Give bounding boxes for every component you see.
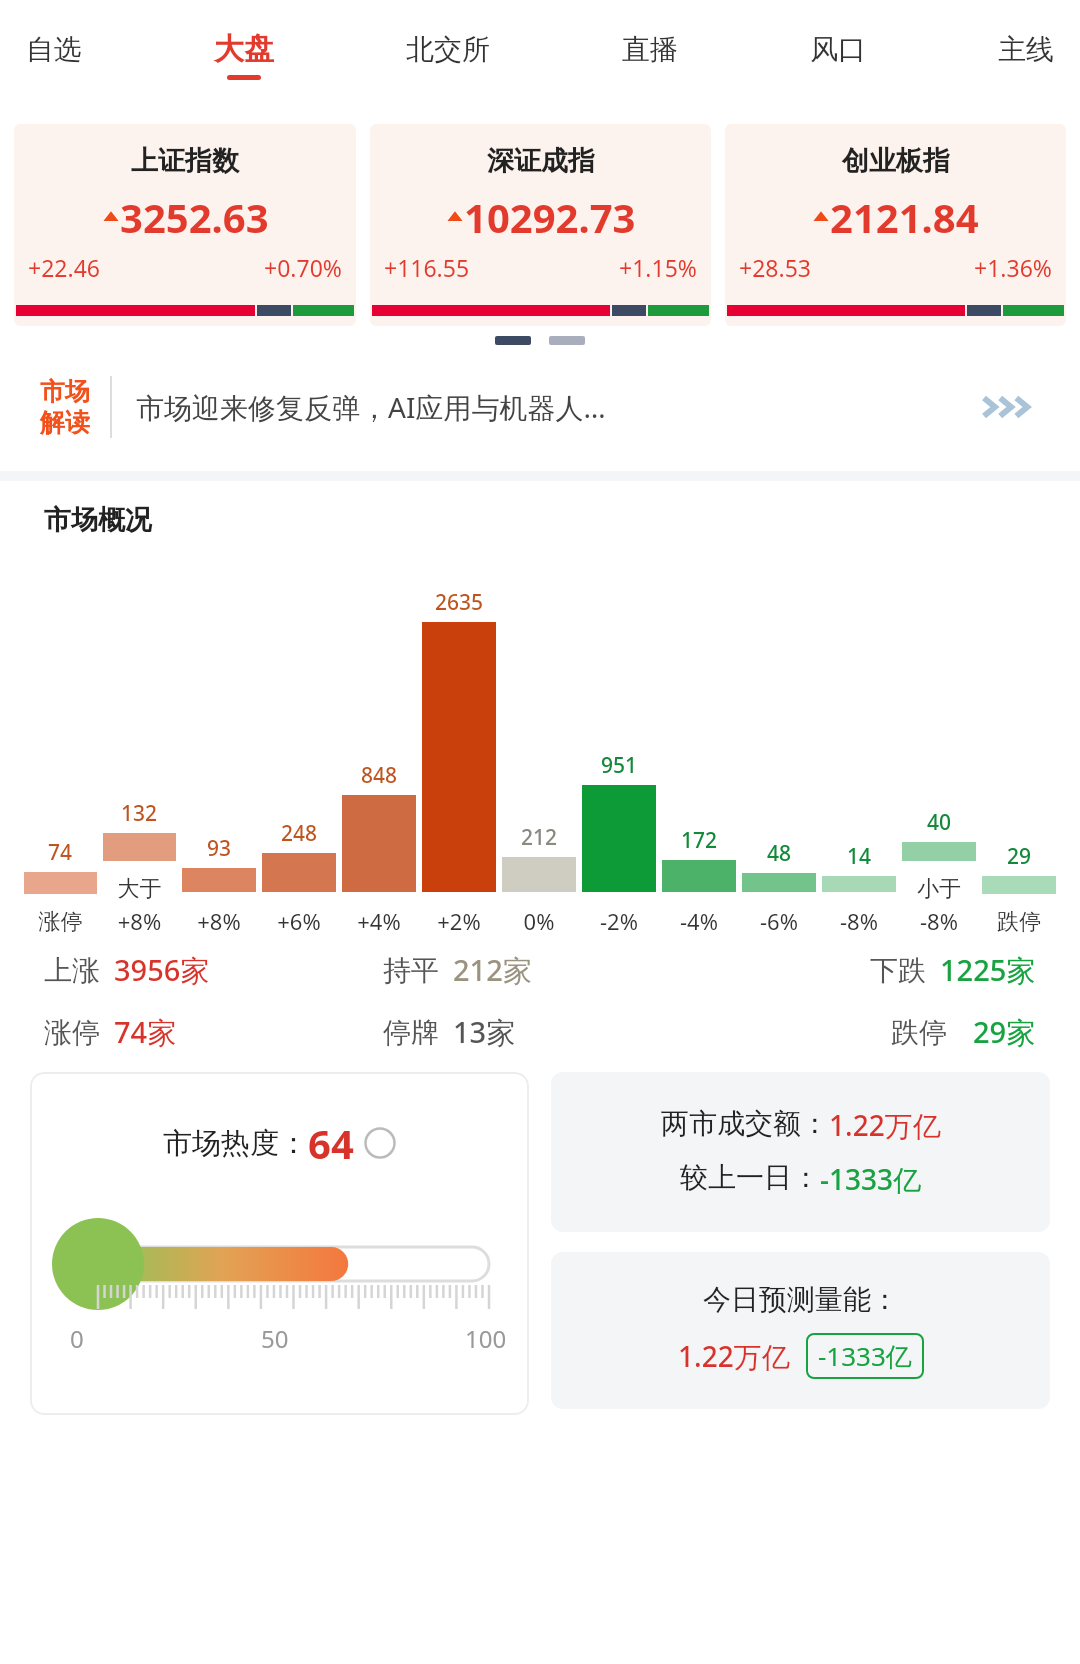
staticText: 1.22万亿 — [678, 1337, 790, 1375]
button[interactable]: 市场 — [0, 357, 1080, 457]
staticText: 3956家 — [114, 950, 210, 990]
button[interactable]: 深证成指 — [370, 124, 711, 326]
staticText: 深证成指 — [487, 144, 595, 178]
staticText: 13家 — [453, 1012, 516, 1052]
other: 更多 — [982, 391, 1040, 423]
staticText: 2121.84 — [830, 190, 979, 244]
staticText: 93 — [207, 834, 232, 863]
button[interactable]: 上证指数 — [14, 124, 356, 326]
staticText: 市场迎来修复反弹，AI应用与机器人… — [136, 388, 982, 426]
button[interactable]: 大盘 — [206, 24, 282, 86]
staticText: -2% — [582, 906, 656, 936]
staticText: -4% — [662, 906, 736, 936]
staticText: 两市成交额： — [661, 1106, 829, 1141]
button[interactable]: 两市成交额： — [551, 1072, 1050, 1232]
staticText: 市场 — [40, 376, 90, 407]
staticText: 172 — [681, 826, 718, 855]
staticText: 132 — [121, 799, 158, 828]
staticText: 跌停 — [891, 1015, 947, 1050]
staticText: 74家 — [114, 1012, 177, 1052]
staticText: 848 — [361, 761, 398, 790]
staticText: 涨停 — [24, 908, 97, 936]
button[interactable]: 风口 — [802, 26, 874, 85]
staticText: +2% — [422, 906, 496, 936]
button[interactable]: 今日预测量能： — [551, 1252, 1050, 1409]
staticText: 1225家 — [940, 950, 1036, 990]
staticText: 北交所 — [406, 32, 490, 67]
staticText: 14 — [847, 842, 872, 871]
staticText: 较上一日： — [680, 1160, 820, 1195]
button[interactable]: 直播 — [614, 26, 686, 85]
staticText: 248 — [281, 819, 318, 848]
staticText: 50 — [261, 1322, 289, 1355]
staticText: 持平 — [383, 953, 439, 988]
staticText: 解读 — [40, 407, 90, 438]
staticText: 大于 — [103, 875, 176, 903]
staticText: 大盘 — [214, 30, 274, 68]
staticText: +1.36% — [974, 252, 1052, 283]
staticText: -1333亿 — [818, 1338, 912, 1374]
staticText: 29 — [1007, 842, 1032, 871]
button[interactable]: 创业板指 — [725, 124, 1066, 326]
staticText: 1.22万亿 — [829, 1106, 941, 1144]
staticText: 上涨 — [44, 953, 100, 988]
button[interactable]: 市场热度： — [30, 1072, 529, 1415]
staticText: 2635 — [435, 588, 484, 617]
other: 说明 — [364, 1127, 396, 1159]
staticText: 951 — [601, 751, 638, 780]
staticText: +28.53 — [739, 252, 811, 283]
staticText: +6% — [262, 906, 336, 936]
staticText: 跌停 — [982, 908, 1056, 936]
staticText: -1333亿 — [820, 1160, 922, 1198]
staticText: 64 — [308, 1116, 354, 1170]
staticText: +1.15% — [619, 252, 697, 283]
staticText: 主线 — [998, 32, 1054, 67]
staticText: 创业板指 — [842, 144, 950, 178]
staticText: 风口 — [810, 32, 866, 67]
staticText: -8% — [822, 906, 896, 936]
button[interactable]: 北交所 — [398, 26, 498, 85]
staticText: 212 — [521, 823, 558, 852]
staticText: +0.70% — [264, 252, 342, 283]
staticText: +22.46 — [28, 252, 100, 283]
staticText: 74 — [48, 838, 73, 867]
staticText: 自选 — [26, 32, 82, 67]
staticText: -6% — [742, 906, 816, 936]
staticText: 3252.63 — [120, 190, 269, 244]
staticText: 市场热度： — [163, 1125, 308, 1162]
staticText: 40 — [927, 808, 952, 837]
staticText: 小于 — [902, 875, 976, 903]
staticText: +8% — [103, 906, 176, 936]
staticText: 212家 — [453, 950, 532, 990]
staticText: 上证指数 — [131, 144, 239, 178]
staticText: +8% — [182, 906, 256, 936]
staticText: 10292.73 — [464, 190, 636, 244]
staticText: 市场概况 — [44, 503, 152, 537]
staticText: 0% — [502, 906, 576, 936]
staticText: 100 — [465, 1322, 507, 1355]
button[interactable]: 主线 — [990, 26, 1062, 85]
staticText: 今日预测量能： — [703, 1282, 899, 1317]
button[interactable]: 自选 — [18, 26, 90, 85]
staticText: 0 — [70, 1322, 84, 1355]
staticText: 下跌 — [870, 953, 926, 988]
staticText: 48 — [767, 839, 792, 868]
staticText: -8% — [902, 906, 976, 936]
staticText: 29家 — [973, 1012, 1036, 1052]
staticText: +116.55 — [384, 252, 470, 283]
staticText: 涨停 — [44, 1015, 100, 1050]
staticText: 直播 — [622, 32, 678, 67]
staticText: +4% — [342, 906, 416, 936]
staticText: 停牌 — [383, 1015, 439, 1050]
